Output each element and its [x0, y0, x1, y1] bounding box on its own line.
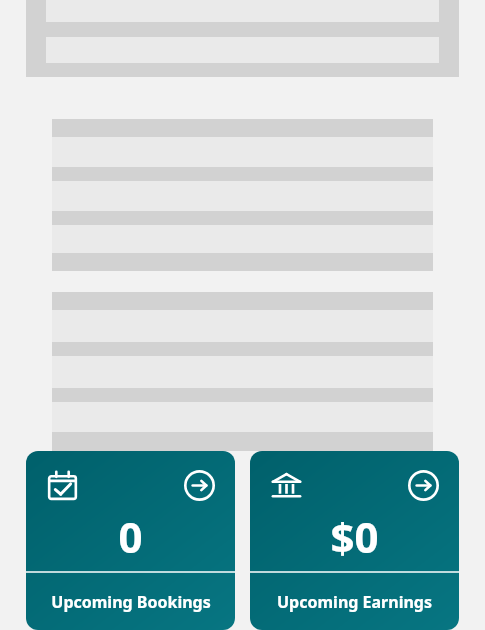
button[interactable]: Earnings: [250, 451, 459, 630]
staticText: 0: [118, 508, 143, 565]
staticText: Upcoming Earnings: [277, 591, 432, 613]
other: Open Bookings: [184, 470, 215, 501]
other: Bookings: [47, 470, 78, 501]
button[interactable]: Bookings: [26, 451, 235, 630]
other: Open Earnings: [408, 470, 439, 501]
other: Earnings: [271, 470, 302, 501]
staticText: Upcoming Bookings: [51, 591, 211, 613]
staticText: $0: [330, 508, 379, 565]
